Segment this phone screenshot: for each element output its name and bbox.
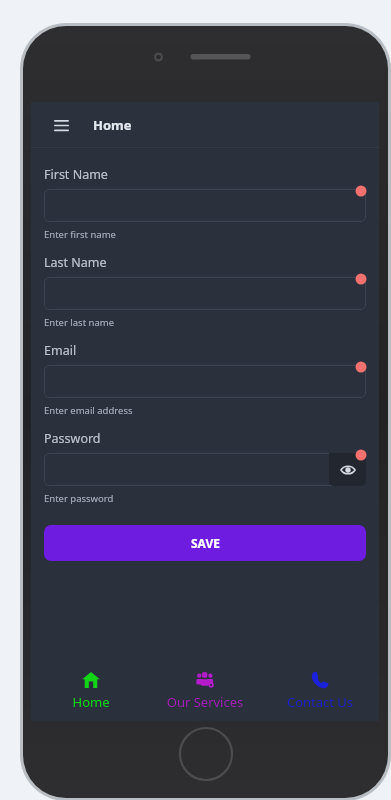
button[interactable]: Show password bbox=[329, 453, 366, 486]
staticText: First Name bbox=[44, 166, 108, 183]
staticText: Last Name bbox=[44, 254, 107, 271]
staticText: SAVE bbox=[191, 535, 220, 551]
staticText: Enter password bbox=[44, 492, 114, 505]
button[interactable]: SAVE bbox=[44, 525, 366, 561]
button[interactable]: Open navigation menu bbox=[45, 109, 77, 141]
staticText: Home bbox=[93, 116, 132, 134]
staticText: Enter email address bbox=[44, 404, 133, 417]
button[interactable]: Last Name bbox=[44, 277, 366, 310]
staticText: Email bbox=[44, 342, 77, 359]
button[interactable]: Home bbox=[36, 653, 146, 711]
staticText: Contact Us bbox=[265, 693, 375, 711]
staticText: Enter first name bbox=[44, 228, 116, 241]
staticText: Enter last name bbox=[44, 316, 115, 329]
button[interactable]: Password bbox=[44, 453, 366, 486]
staticText: Our Services bbox=[150, 693, 260, 711]
button[interactable]: Our Services bbox=[150, 653, 260, 711]
button[interactable]: First Name bbox=[44, 189, 366, 222]
staticText: Password bbox=[44, 430, 101, 447]
staticText: Home bbox=[36, 693, 146, 711]
button[interactable]: Contact Us bbox=[265, 653, 375, 711]
button[interactable]: Email bbox=[44, 365, 366, 398]
